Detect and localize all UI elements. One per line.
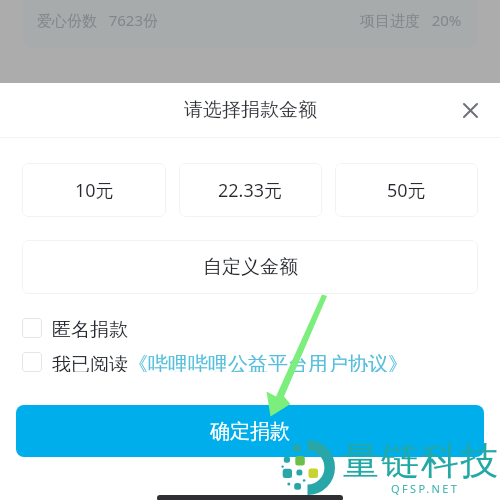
button[interactable]: 确定捐款 xyxy=(16,405,484,457)
button[interactable]: 10元 xyxy=(22,163,166,217)
staticText: 我已阅读《哔哩哔哩公益平台用户协议》 xyxy=(52,352,408,372)
button[interactable]: 我已阅读《哔哩哔哩公益平台用户协议》 xyxy=(22,352,408,372)
staticText: 爱心份数 7623份 xyxy=(37,10,159,30)
staticText: 匿名捐款 xyxy=(52,318,128,338)
staticText: 自定义金额 xyxy=(203,255,298,279)
staticText: 50元 xyxy=(387,178,426,203)
staticText: 请选择捐款金额 xyxy=(184,98,317,122)
button[interactable]: 22.33元 xyxy=(179,163,322,217)
button[interactable]: 50元 xyxy=(335,163,478,217)
staticText: 10元 xyxy=(75,178,114,203)
button[interactable]: Close xyxy=(453,93,487,127)
button[interactable]: 自定义金额 xyxy=(22,240,478,294)
staticText: 项目进度 20% xyxy=(360,10,462,30)
staticText: 确定捐款 xyxy=(210,419,290,444)
button[interactable]: 匿名捐款 xyxy=(22,318,128,338)
staticText: QFSP.NET xyxy=(391,481,460,496)
staticText: 22.33元 xyxy=(218,178,283,203)
staticText: 量链科技 xyxy=(341,437,499,485)
